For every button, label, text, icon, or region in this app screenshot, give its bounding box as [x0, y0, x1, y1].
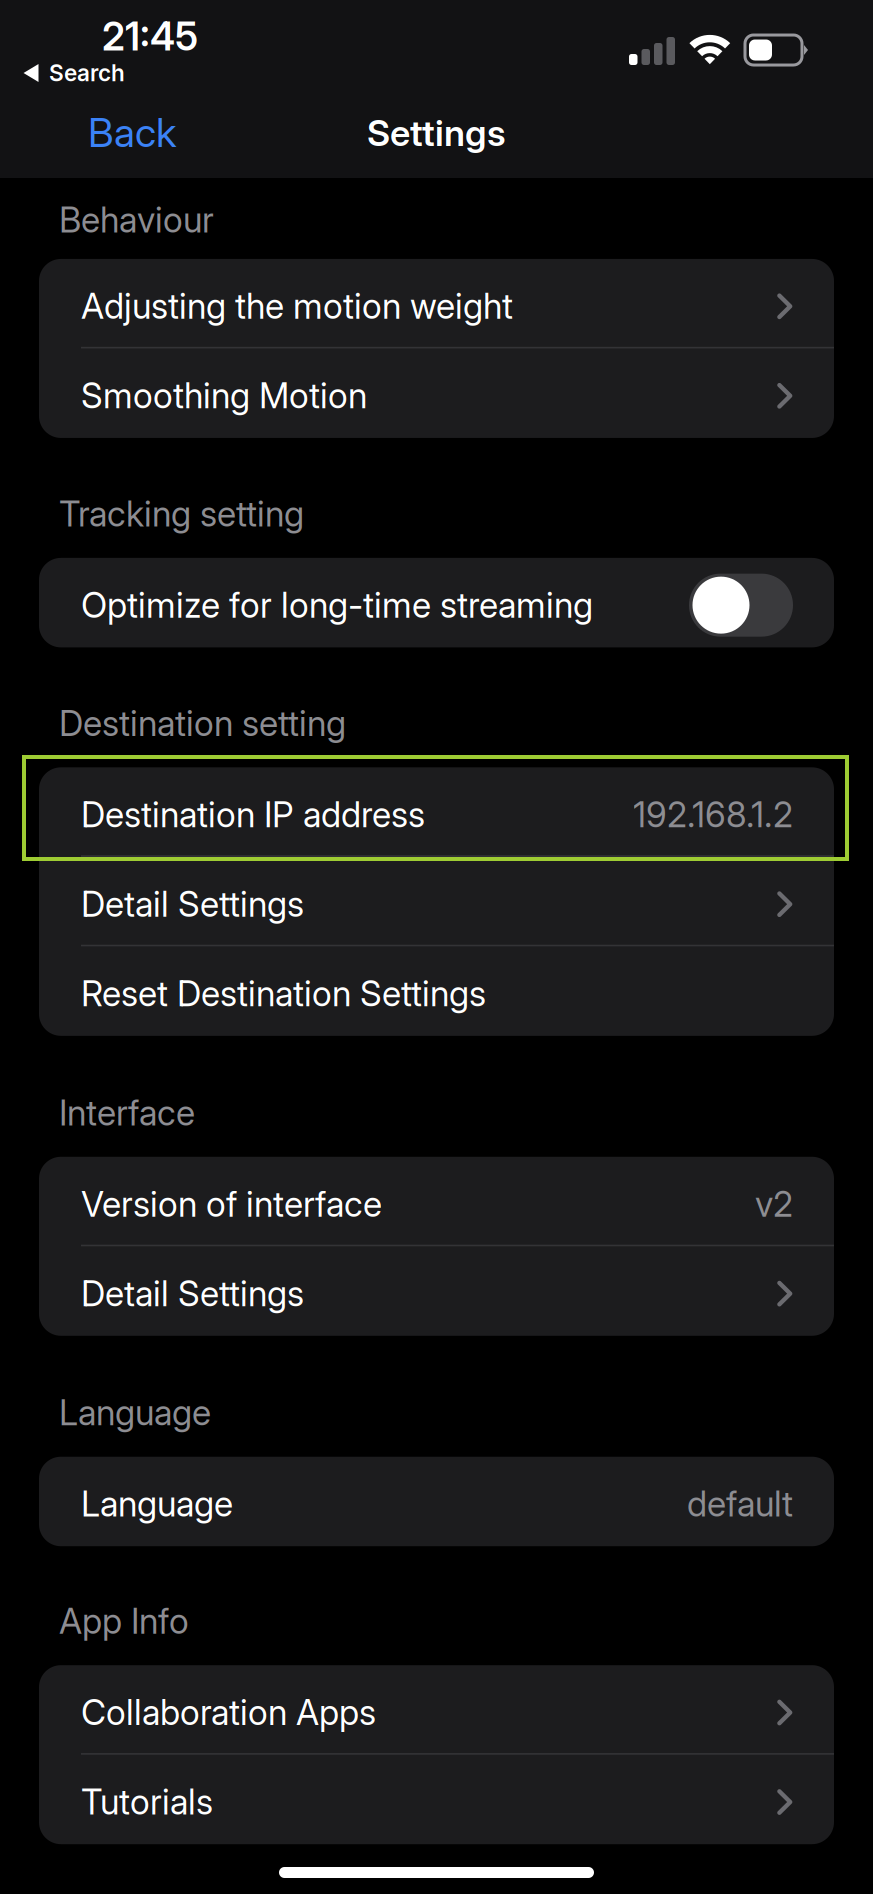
staticText: 21:45 — [102, 13, 198, 60]
button[interactable]: Search — [13, 54, 135, 92]
staticText: Interface — [59, 1092, 195, 1134]
staticText: Behaviour — [59, 199, 214, 241]
staticText: Settings — [367, 111, 506, 155]
staticText: Version of interface — [81, 1183, 382, 1225]
button[interactable]: Detail Settings — [39, 1246, 834, 1336]
staticText: Adjusting the motion weight — [81, 285, 513, 327]
button[interactable]: Detail Settings — [39, 857, 834, 946]
staticText: v2 — [755, 1183, 793, 1225]
button[interactable]: Optimize for long-time streaming — [39, 558, 834, 647]
button[interactable]: Smoothing Motion — [39, 348, 834, 438]
staticText: Search — [49, 59, 125, 87]
staticText: Tracking setting — [59, 493, 304, 535]
button[interactable]: Version of interface — [39, 1157, 834, 1246]
staticText: Destination IP address — [81, 794, 425, 835]
button[interactable]: Language — [39, 1457, 834, 1546]
staticText: Reset Destination Settings — [81, 973, 486, 1014]
staticText: default — [687, 1483, 793, 1525]
staticText: App Info — [59, 1600, 189, 1642]
staticText: Collaboration Apps — [81, 1691, 376, 1733]
staticText: Smoothing Motion — [81, 375, 367, 417]
button[interactable]: Back — [74, 97, 190, 167]
staticText: Back — [88, 108, 176, 157]
staticText: Language — [81, 1483, 233, 1525]
button[interactable]: Tutorials — [39, 1755, 834, 1844]
staticText: Detail Settings — [81, 1273, 304, 1314]
button[interactable]: Collaboration Apps — [39, 1665, 834, 1755]
staticText: Language — [59, 1392, 211, 1434]
staticText: 192.168.1.2 — [633, 794, 793, 835]
button[interactable]: Reset Destination Settings — [39, 946, 834, 1036]
staticText: Optimize for long-time streaming — [81, 584, 593, 626]
staticText: Destination setting — [59, 702, 346, 744]
button[interactable]: Adjusting the motion weight — [39, 259, 834, 348]
button[interactable]: Destination IP address — [39, 767, 834, 857]
staticText: Detail Settings — [81, 883, 304, 925]
staticText: Tutorials — [81, 1781, 213, 1823]
